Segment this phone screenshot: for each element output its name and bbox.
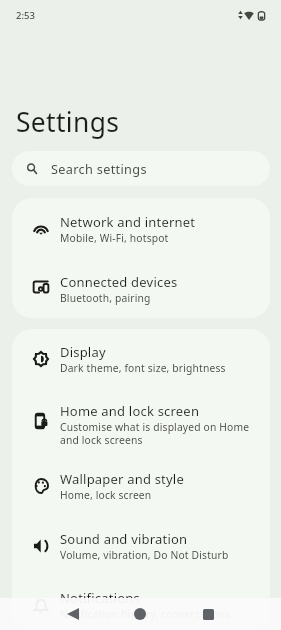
- staticText: Dark theme, font size, brightness: [60, 361, 226, 375]
- button[interactable]: Home: [124, 598, 156, 630]
- staticText: Volume, vibration, Do Not Disturb: [60, 548, 229, 562]
- staticText: Notifications: [60, 589, 140, 607]
- staticText: Customise what is displayed on Home and …: [60, 420, 265, 447]
- button[interactable]: Recent apps: [192, 598, 224, 630]
- button[interactable]: Network and internet: [12, 198, 270, 259]
- staticText: Home, lock screen: [60, 488, 152, 502]
- staticText: Home and lock screen: [60, 402, 200, 420]
- staticText: Sound and vibration: [60, 530, 188, 548]
- button[interactable]: Display: [12, 329, 270, 388]
- staticText: Connected devices: [60, 273, 178, 291]
- button[interactable]: Back: [57, 598, 89, 630]
- button[interactable]: Sound and vibration: [12, 516, 270, 575]
- staticText: Display: [60, 343, 106, 361]
- button[interactable]: Wallpaper and style: [12, 455, 270, 516]
- staticText: Network and internet: [60, 213, 196, 231]
- button[interactable]: Search settings: [12, 151, 270, 186]
- staticText: Settings: [16, 104, 120, 140]
- staticText: Bluetooth, pairing: [60, 291, 151, 305]
- staticText: 2:53: [16, 9, 35, 22]
- button[interactable]: Notifications: [12, 575, 270, 630]
- staticText: Search settings: [51, 160, 147, 177]
- staticText: Mobile, Wi-Fi, hotspot: [60, 231, 169, 245]
- button[interactable]: Home and lock screen: [12, 388, 270, 455]
- staticText: Notification history, conversations: [60, 607, 231, 621]
- staticText: Wallpaper and style: [60, 470, 184, 488]
- button[interactable]: Connected devices: [12, 259, 270, 318]
